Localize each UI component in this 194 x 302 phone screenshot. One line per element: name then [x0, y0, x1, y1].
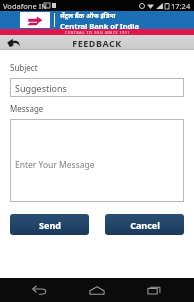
button[interactable]: Cancel [105, 214, 184, 235]
button[interactable]: Send [10, 214, 89, 235]
staticText: Suggestions [15, 82, 67, 94]
staticText: Cancel [130, 219, 160, 231]
button[interactable]: Back [0, 35, 26, 50]
button[interactable]: Recent apps [137, 280, 171, 300]
button[interactable]: Home [80, 280, 114, 300]
staticText: Subject [10, 62, 38, 73]
staticText: Send [39, 219, 61, 231]
staticText: FEEDBACK [72, 37, 122, 49]
staticText: सेंट्रल बैंक ऑफ इंडिया [60, 11, 116, 20]
button[interactable]: Suggestions [10, 78, 184, 97]
staticText: CENTRAL TO YOU SINCE 1911 [65, 30, 130, 35]
staticText: 17:24 [171, 1, 191, 11]
button[interactable]: Back [23, 280, 57, 300]
staticText: Central Bank of India [60, 21, 140, 29]
staticText: Vodafone IN [3, 1, 47, 11]
staticText: Enter Your Message [15, 159, 95, 171]
staticText: Message [10, 103, 44, 114]
button[interactable]: Enter Your Message [10, 119, 184, 202]
